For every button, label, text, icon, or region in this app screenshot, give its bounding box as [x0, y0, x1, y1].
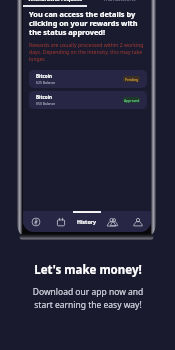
staticText: You can access the details by clicking o…: [29, 9, 144, 37]
staticText: Rewards are usually processed within 2 w…: [29, 42, 144, 63]
staticText: History: [77, 218, 96, 225]
staticText: Withdrawal request: [28, 0, 83, 2]
staticText: Bitcoin: [36, 73, 53, 79]
button[interactable]: History: [73, 211, 99, 232]
button[interactable]: Transactions: [87, 0, 151, 7]
staticText: Pending: [125, 77, 139, 82]
button[interactable]: Earnings: [23, 211, 48, 232]
button[interactable]: Bitcoin: [29, 91, 147, 109]
staticText: Approved: [124, 98, 140, 103]
button[interactable]: Friends: [99, 211, 125, 232]
staticText: Download our app now and start earning t…: [27, 286, 149, 310]
button[interactable]: Profile: [125, 211, 151, 232]
staticText: $25 Balance: [36, 80, 56, 85]
staticText: Let's make money!: [34, 262, 142, 278]
button[interactable]: Calendar: [48, 211, 73, 232]
staticText: Bitcoin: [36, 94, 53, 100]
staticText: Transactions: [103, 0, 136, 2]
staticText: $50 Balance: [36, 101, 56, 106]
button[interactable]: Withdrawal request: [23, 0, 87, 7]
button[interactable]: Bitcoin: [29, 70, 147, 88]
